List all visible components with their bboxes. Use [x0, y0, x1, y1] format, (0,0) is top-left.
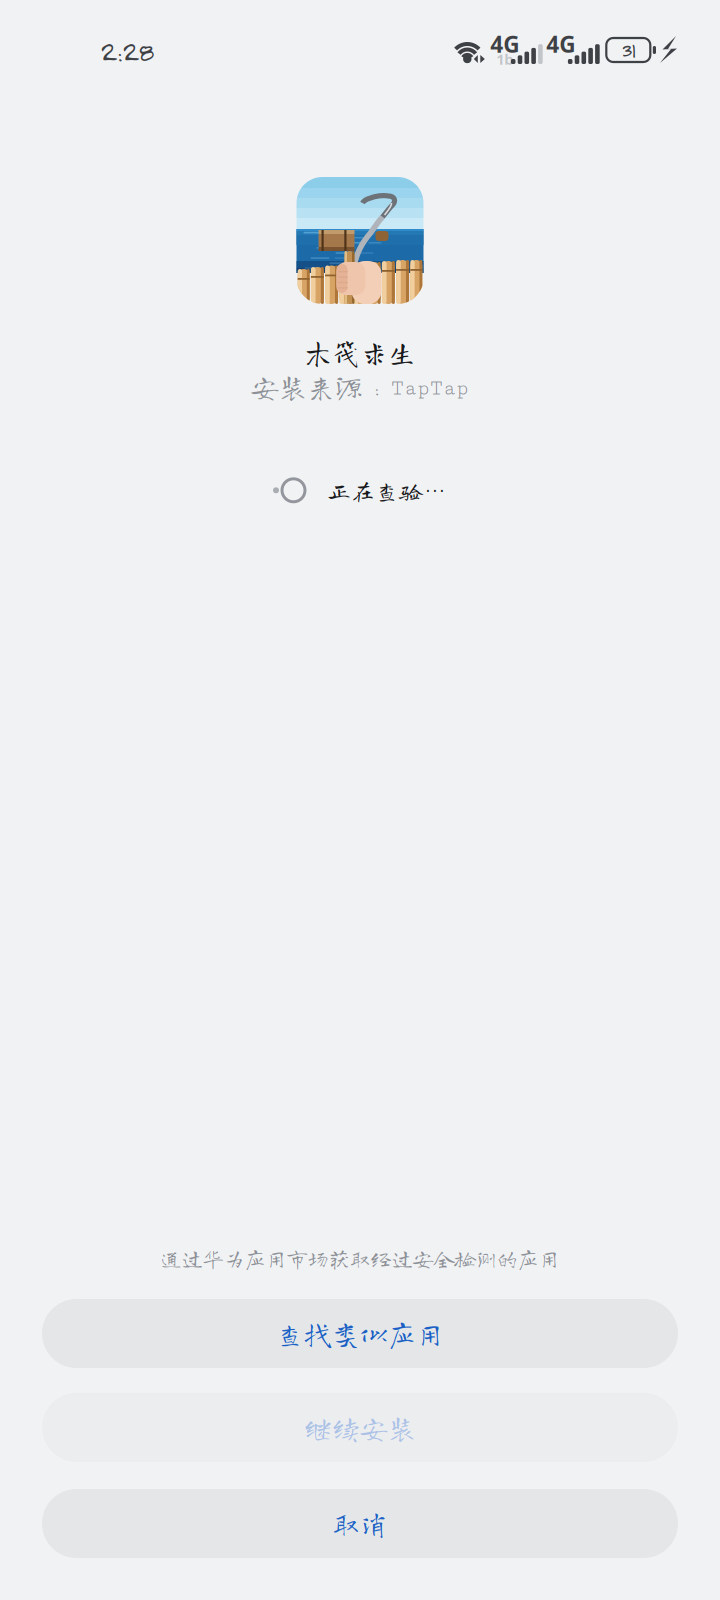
button[interactable]: 继续安装	[42, 1393, 678, 1462]
staticText: 查找类似应用	[276, 1319, 444, 1347]
staticText: 4G	[546, 29, 575, 59]
staticText: 继续安装	[304, 1413, 416, 1441]
staticText: 2:28	[100, 33, 153, 67]
staticText: 1b	[496, 49, 513, 69]
staticText: 31	[621, 37, 635, 63]
staticText: 通过华为应用市场获取经过安全检测的应用	[160, 1248, 559, 1269]
button[interactable]: 取消	[42, 1489, 678, 1558]
staticText: 正在查验…	[327, 478, 447, 502]
button[interactable]: 查找类似应用	[42, 1299, 678, 1368]
staticText: 取消	[332, 1509, 388, 1537]
staticText: 4G	[490, 29, 519, 59]
staticText: 安装来源：TapTap	[251, 373, 469, 400]
staticText: 木筏求生	[304, 338, 416, 366]
